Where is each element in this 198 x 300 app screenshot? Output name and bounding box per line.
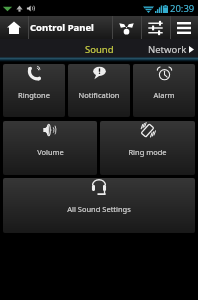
staticText: Ringtone — [18, 90, 50, 100]
button[interactable]: Notification — [68, 64, 130, 117]
button[interactable]: Menu — [170, 16, 198, 39]
button[interactable]: Home — [0, 16, 27, 39]
button[interactable]: Ringtone — [3, 64, 65, 117]
staticText: Network — [148, 43, 187, 56]
staticText: Control Panel — [30, 21, 94, 34]
staticText: All Sound Settings — [67, 204, 131, 214]
staticText: Notification — [78, 90, 120, 100]
button[interactable]: Volume — [3, 121, 97, 175]
button[interactable]: Settings — [141, 16, 170, 39]
button[interactable]: Alarm — [133, 64, 195, 117]
button[interactable]: Profiles — [112, 16, 141, 39]
staticText: Alarm — [153, 90, 175, 100]
button[interactable]: All Sound Settings — [3, 178, 195, 233]
staticText: 20:39 — [170, 2, 195, 15]
staticText: Volume — [37, 147, 64, 157]
button[interactable]: Ring mode — [100, 121, 195, 175]
staticText: Ring mode — [128, 147, 167, 157]
staticText: Sound — [85, 43, 114, 56]
